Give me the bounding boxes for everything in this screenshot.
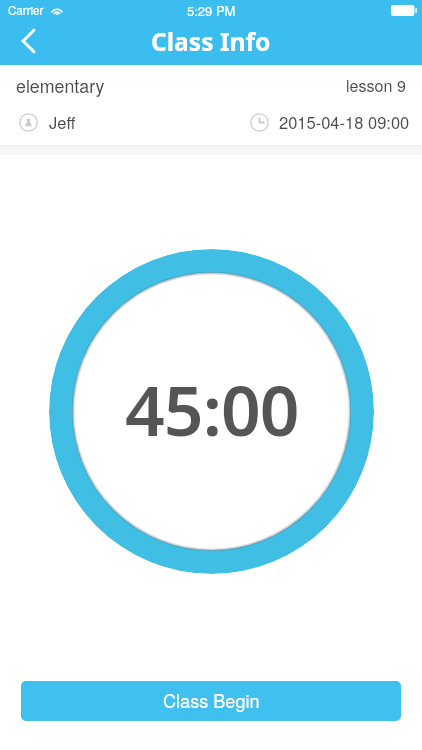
staticText: Carrier	[8, 2, 44, 19]
staticText: elementary	[16, 73, 105, 98]
button[interactable]: Class timer 45:00	[49, 249, 374, 574]
button[interactable]: Class Begin	[21, 681, 401, 721]
staticText: 2015-04-18 09:00	[279, 110, 410, 134]
staticText: 5:29 PM	[187, 1, 236, 20]
button[interactable]: Back	[4, 19, 52, 62]
staticText: Jeff	[49, 110, 76, 134]
staticText: Class Begin	[163, 687, 260, 713]
staticText: Class Info	[151, 25, 271, 59]
staticText: 45:00	[125, 362, 299, 457]
staticText: lesson 9	[346, 74, 406, 97]
